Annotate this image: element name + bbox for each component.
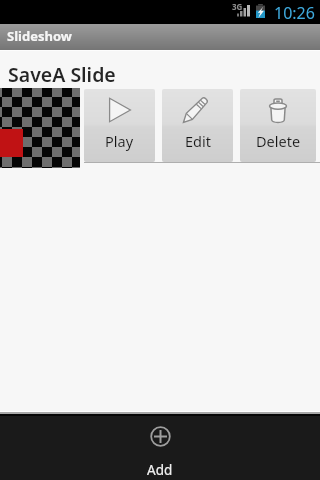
staticText: Slideshow — [7, 27, 72, 45]
staticText: 10:26 — [274, 2, 315, 24]
staticText: Add — [147, 461, 173, 479]
staticText: Edit — [185, 131, 211, 151]
staticText: Play — [105, 131, 134, 151]
staticText: Delete — [256, 131, 301, 151]
staticText: 3G — [232, 1, 243, 12]
other: Add — [150, 426, 171, 447]
staticText: SaveA Slide — [8, 61, 116, 88]
button[interactable]: Delete — [240, 89, 316, 162]
button[interactable]: Edit — [162, 89, 233, 162]
button[interactable]: Play — [84, 89, 155, 162]
button[interactable]: Add — [112, 416, 208, 480]
